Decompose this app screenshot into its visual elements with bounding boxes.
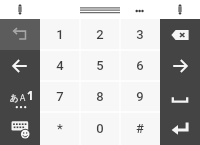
button[interactable]: Emoji and keyboard xyxy=(0,112,40,145)
button[interactable]: Voice input xyxy=(8,0,32,19)
staticText: 9 xyxy=(136,89,144,104)
button[interactable]: 0 xyxy=(80,112,120,145)
button[interactable]: 5 xyxy=(80,50,120,81)
staticText: 1 xyxy=(27,88,34,104)
button[interactable]: 6 xyxy=(120,50,160,81)
button[interactable]: 1 xyxy=(40,19,80,50)
staticText: 6 xyxy=(136,58,144,73)
button[interactable]: Cursor right xyxy=(160,50,200,81)
button[interactable]: Undo xyxy=(0,19,40,50)
button[interactable]: 4 xyxy=(40,50,80,81)
button[interactable]: Change input mode xyxy=(0,81,40,112)
button[interactable]: # xyxy=(120,112,160,145)
button[interactable]: 2 xyxy=(80,19,120,50)
button[interactable]: 3 xyxy=(120,19,160,50)
staticText: 5 xyxy=(96,58,104,73)
staticText: * xyxy=(57,121,63,136)
staticText: 7 xyxy=(56,89,64,104)
staticText: 8 xyxy=(96,89,104,104)
button[interactable]: Cursor left xyxy=(0,50,40,81)
button[interactable]: Enter xyxy=(160,112,200,145)
button[interactable]: Backspace xyxy=(160,19,200,50)
staticText: A xyxy=(20,92,26,104)
button[interactable]: Space xyxy=(160,81,200,112)
button[interactable]: 7 xyxy=(40,81,80,112)
button[interactable]: * xyxy=(40,112,80,145)
button[interactable]: Settings xyxy=(168,0,192,19)
button[interactable]: More options xyxy=(130,0,149,19)
staticText: 4 xyxy=(56,58,64,73)
staticText: # xyxy=(136,121,144,136)
button[interactable]: Resize keyboard xyxy=(80,0,120,19)
staticText: 1 xyxy=(56,27,64,42)
staticText: 3 xyxy=(136,27,144,42)
staticText: 0 xyxy=(96,121,104,136)
button[interactable]: 9 xyxy=(120,81,160,112)
staticText: 2 xyxy=(96,27,104,42)
staticText: あ xyxy=(10,93,19,104)
button[interactable]: 8 xyxy=(80,81,120,112)
